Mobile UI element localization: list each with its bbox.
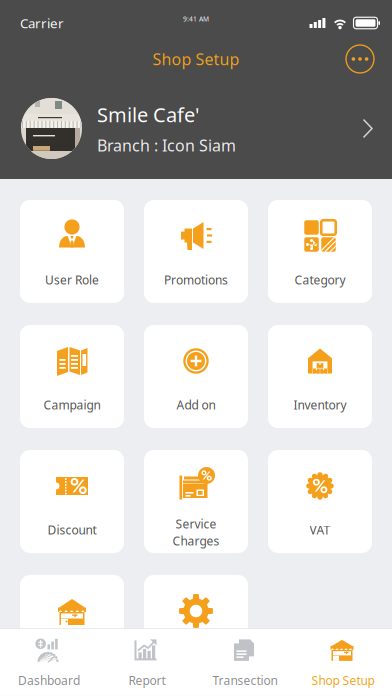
button[interactable]: Service — [144, 450, 248, 553]
staticText: Add on — [176, 397, 215, 413]
staticText: Smile Cafe' — [97, 101, 200, 128]
button[interactable]: Campaign — [20, 325, 124, 428]
button[interactable]: Add on — [144, 325, 248, 428]
button[interactable]: Inventory — [268, 325, 372, 428]
staticText: User Role — [45, 272, 99, 288]
button[interactable]: Category — [268, 200, 372, 303]
button[interactable]: VAT — [268, 450, 372, 553]
staticText: Service — [175, 516, 216, 532]
staticText: Campaign — [43, 397, 100, 413]
button[interactable]: Shop — [20, 575, 124, 678]
staticText: Shop Setup — [152, 48, 239, 70]
staticText: Category — [294, 272, 345, 288]
staticText: VAT — [309, 522, 330, 538]
button[interactable]: Transection — [196, 629, 294, 696]
button[interactable]: Dashboard — [0, 629, 98, 696]
button[interactable]: Promotions — [144, 200, 248, 303]
button[interactable]: Report — [98, 629, 196, 696]
staticText: Promotions — [164, 272, 228, 288]
button[interactable]: Shop Setup — [294, 629, 392, 696]
staticText: Inventory — [293, 397, 346, 413]
staticText: Discount — [47, 522, 96, 538]
staticText: Charges — [172, 533, 219, 549]
staticText: Transection — [212, 672, 277, 688]
staticText: Shop Setup — [311, 672, 374, 688]
button[interactable]: Smile Cafe' — [0, 88, 392, 169]
staticText: Report — [128, 672, 165, 688]
button[interactable]: User Role — [20, 200, 124, 303]
staticText: 9:41 AM — [183, 15, 209, 23]
button[interactable]: More options — [338, 37, 382, 81]
button[interactable]: Setting — [144, 575, 248, 678]
staticText: Branch : Icon Siam — [97, 135, 236, 156]
staticText: Dashboard — [18, 672, 80, 688]
staticText: Carrier — [20, 14, 64, 32]
button[interactable]: Discount — [20, 450, 124, 553]
